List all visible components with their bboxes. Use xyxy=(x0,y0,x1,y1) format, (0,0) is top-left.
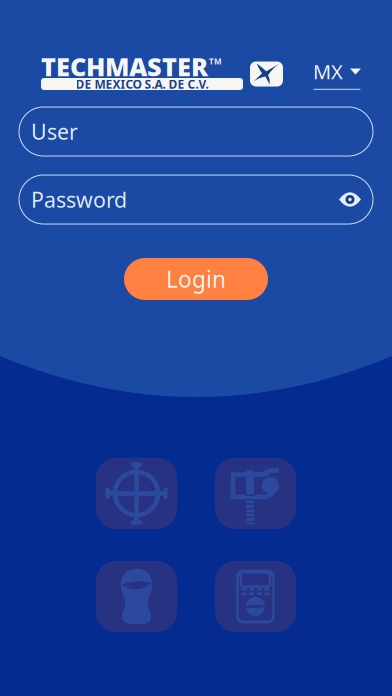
staticText: TM xyxy=(209,56,222,67)
staticText: Password xyxy=(31,185,127,214)
staticText: DE MEXICO S.A. DE C.V. xyxy=(75,76,208,92)
staticText: MX xyxy=(313,58,343,85)
button[interactable]: Show password xyxy=(337,187,363,211)
button[interactable]: Diagnostics xyxy=(215,561,296,632)
button[interactable]: Login xyxy=(124,258,268,300)
staticText: TECHMASTER xyxy=(41,50,208,83)
button[interactable]: Measurement xyxy=(215,458,296,529)
staticText: User xyxy=(31,117,78,146)
button[interactable]: Safety xyxy=(96,561,177,632)
button[interactable]: Alignment xyxy=(96,458,177,529)
button[interactable]: Country MX xyxy=(313,58,361,90)
staticText: Login xyxy=(166,264,226,294)
